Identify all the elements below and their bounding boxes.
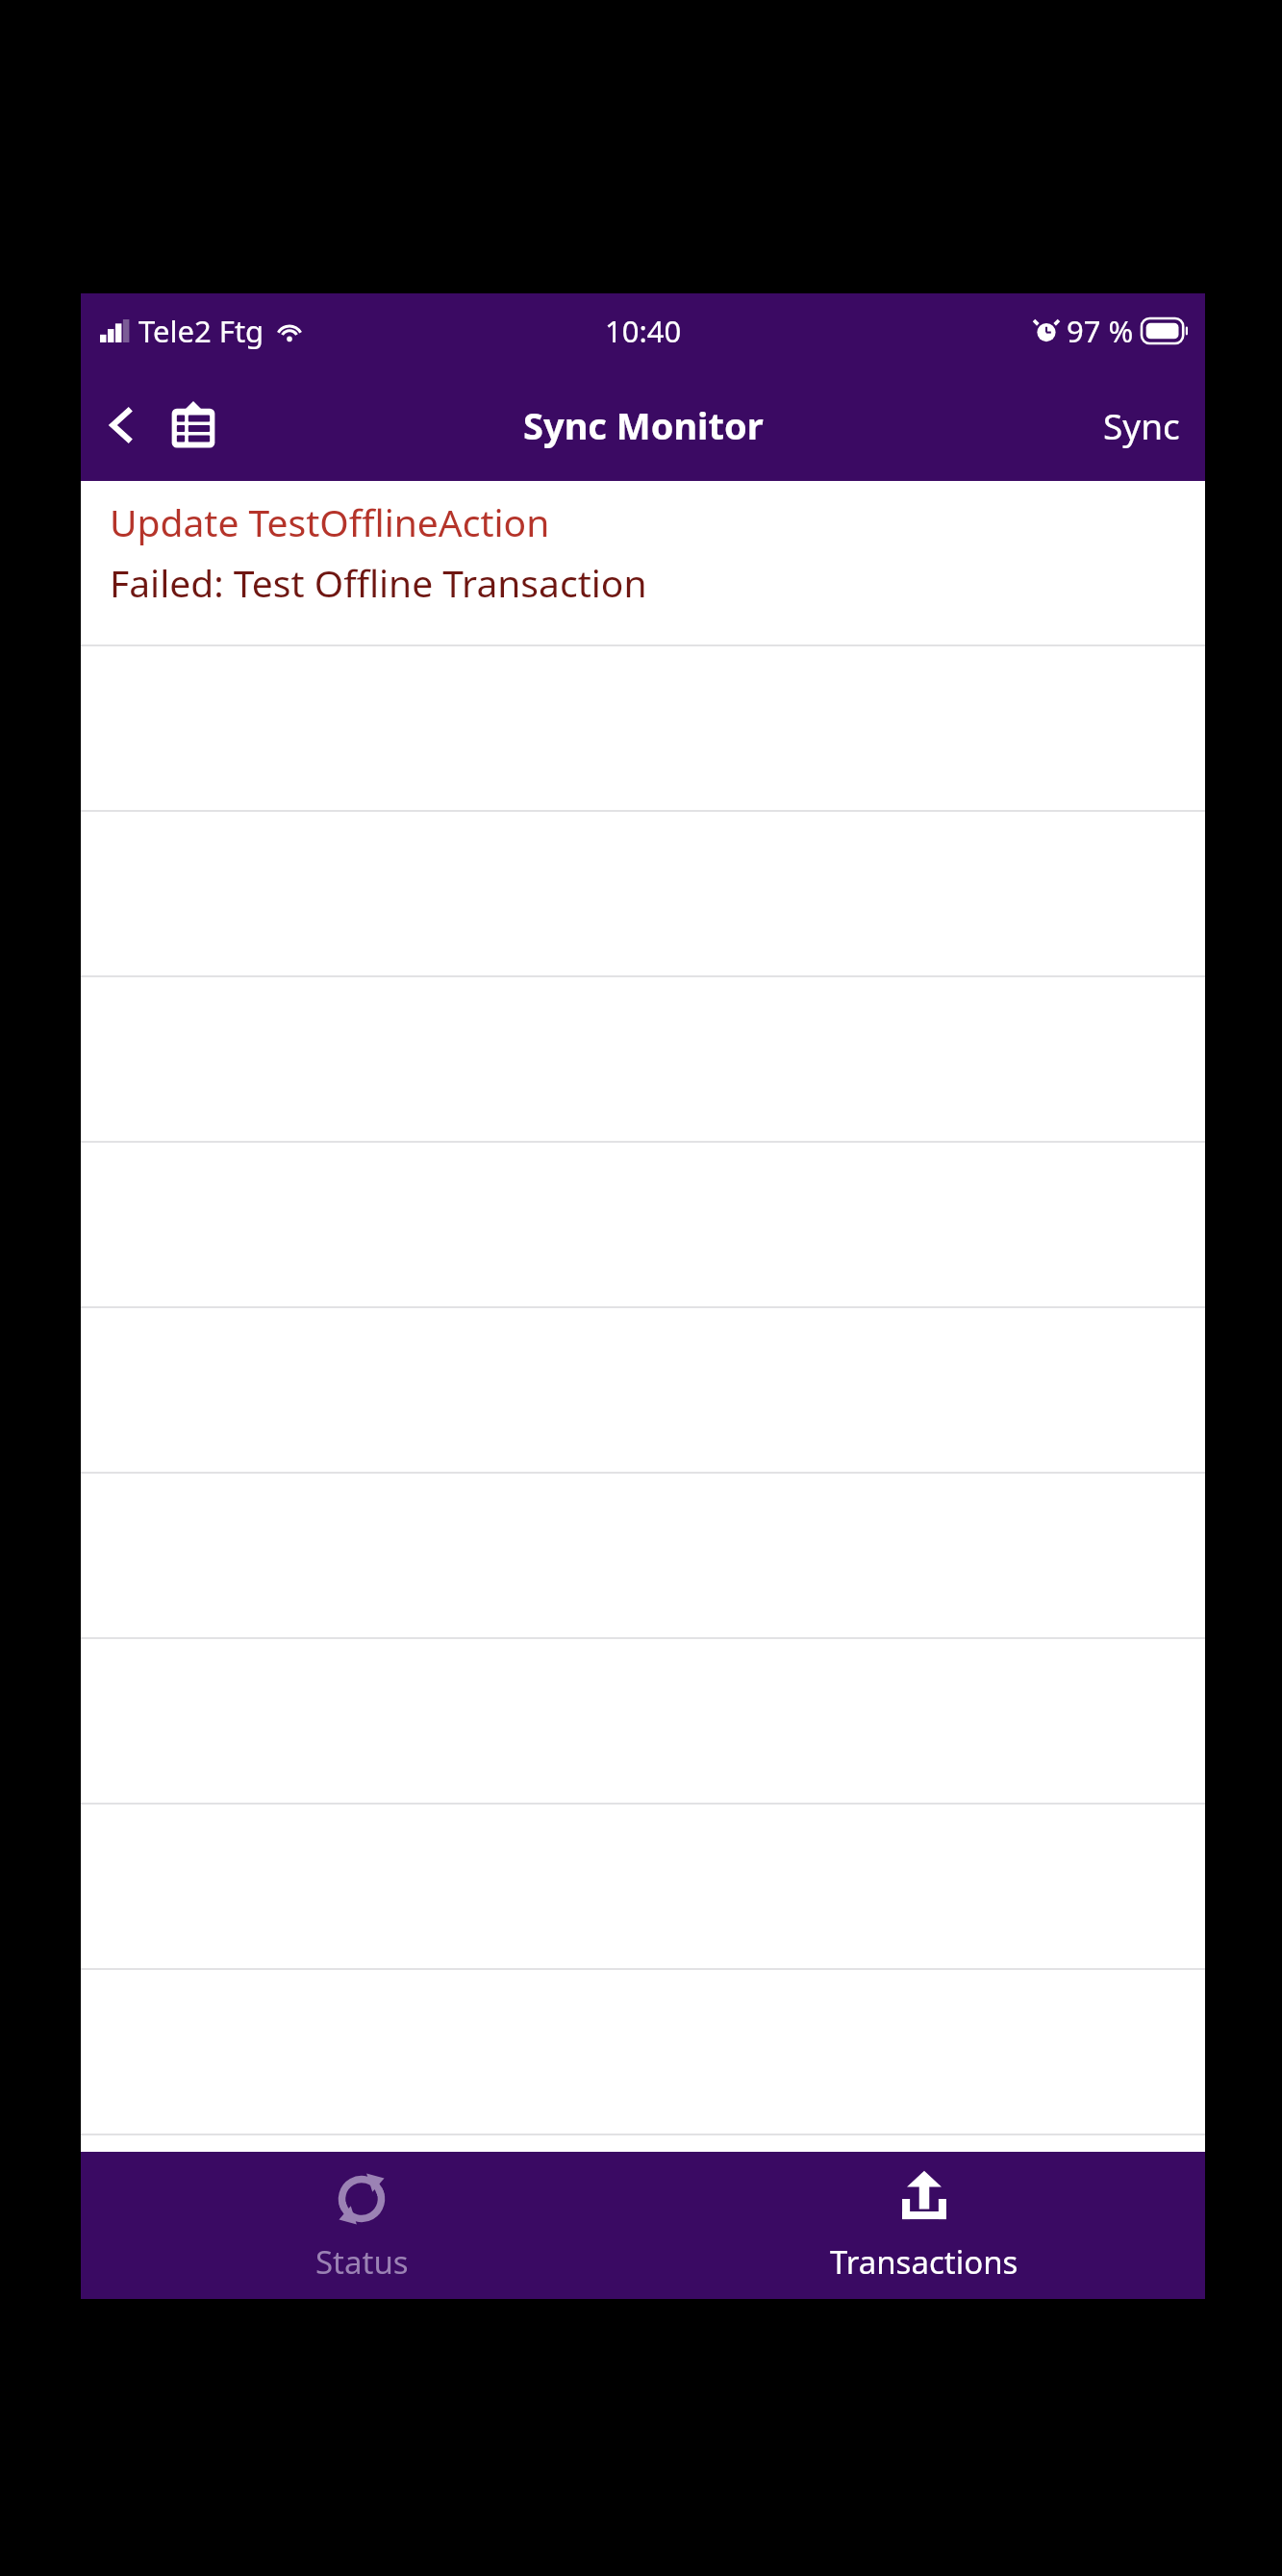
staticText: 10:40 [605,311,682,351]
button[interactable] [81,1308,1205,1474]
button[interactable]: Transactions [642,2152,1205,2299]
button[interactable]: Sync [1078,384,1205,467]
staticText: Update TestOfflineAction [110,496,550,547]
button[interactable]: Back [88,391,156,459]
staticText: Status [315,2240,409,2284]
button[interactable]: Update TestOfflineAction [81,481,1205,646]
button[interactable] [81,646,1205,812]
button[interactable]: Status [81,2152,642,2299]
staticText: Sync Monitor [523,400,764,450]
button[interactable] [81,977,1205,1143]
staticText: Transactions [830,2240,1018,2284]
button[interactable] [81,1639,1205,1805]
staticText: Sync [1103,401,1180,449]
staticText: Tele2 Ftg [138,311,264,351]
button[interactable] [81,1805,1205,1970]
staticText: Failed: Test Offline Transaction [110,557,647,608]
staticText: 97 % [1067,311,1134,351]
button[interactable]: List [156,388,231,463]
